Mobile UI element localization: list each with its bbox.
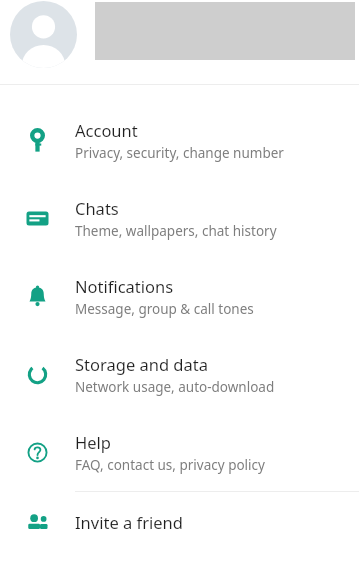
staticText: Privacy, security, change number: [75, 144, 284, 162]
staticText: Network usage, auto-download: [75, 378, 275, 396]
button[interactable]: Notifications: [0, 257, 359, 335]
button[interactable]: Account: [0, 101, 359, 179]
staticText: Theme, wallpapers, chat history: [75, 222, 277, 240]
staticText: Storage and data: [75, 353, 208, 375]
staticText: Help: [75, 431, 111, 453]
button[interactable]: Chats: [0, 179, 359, 257]
button[interactable]: Help: [0, 413, 359, 491]
staticText: Chats: [75, 197, 119, 219]
button[interactable]: Storage and data: [0, 335, 359, 413]
staticText: FAQ, contact us, privacy policy: [75, 456, 265, 474]
staticText: Account: [75, 119, 138, 141]
button[interactable]: Invite a friend: [0, 492, 359, 552]
staticText: Notifications: [75, 275, 174, 297]
button[interactable]: [0, 0, 359, 84]
staticText: Message, group & call tones: [75, 300, 254, 318]
staticText: Invite a friend: [75, 511, 183, 533]
